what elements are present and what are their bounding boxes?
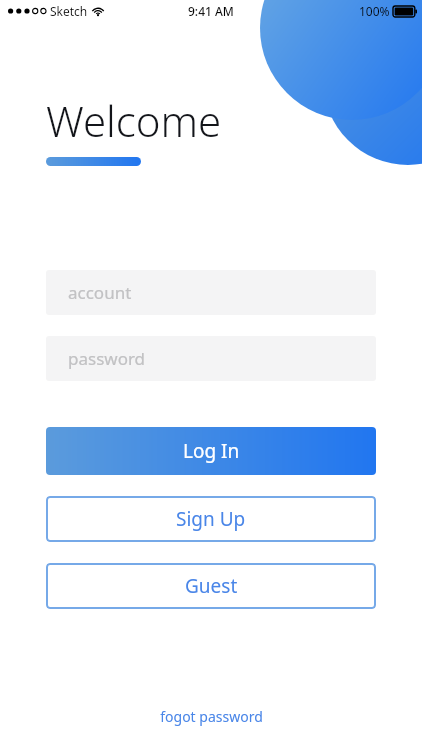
button[interactable]: password: [46, 336, 376, 381]
button[interactable]: Sign Up: [46, 496, 376, 542]
button[interactable]: account: [46, 270, 376, 315]
button[interactable]: Log In: [46, 427, 376, 475]
button[interactable]: fogot password: [150, 701, 273, 732]
button[interactable]: Guest: [46, 563, 376, 609]
staticText: fogot password: [160, 707, 263, 726]
staticText: Guest: [185, 573, 238, 599]
staticText: 100%: [359, 3, 390, 19]
staticText: Log In: [183, 438, 240, 464]
staticText: password: [68, 347, 146, 370]
staticText: Sign Up: [176, 506, 246, 532]
staticText: Sketch: [50, 3, 88, 19]
staticText: account: [68, 281, 132, 304]
staticText: Welcome: [46, 92, 222, 149]
staticText: 9:41 AM: [188, 3, 234, 19]
